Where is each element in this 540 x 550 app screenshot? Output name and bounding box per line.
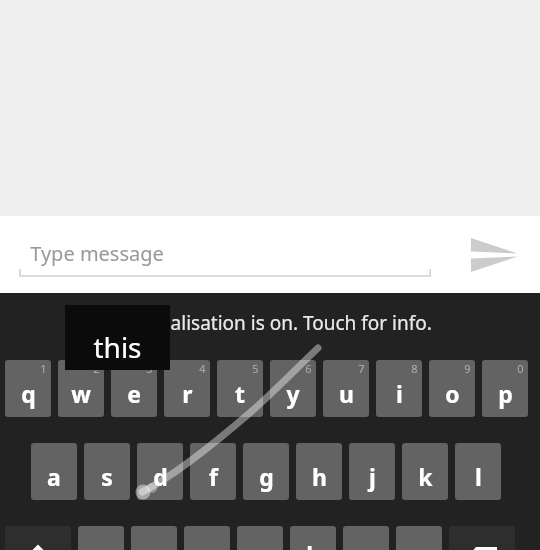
button[interactable]: 9 [429, 360, 475, 417]
button[interactable]: Personalisation is on. Touch for info. [0, 293, 540, 348]
button[interactable]: f [190, 443, 236, 500]
staticText: l [475, 461, 482, 492]
button[interactable]: this [65, 305, 170, 370]
button[interactable]: 1 [5, 360, 51, 417]
button[interactable]: d [137, 443, 183, 500]
button[interactable]: l [455, 443, 501, 500]
staticText: g [259, 461, 274, 492]
staticText: 4 [199, 361, 206, 376]
button[interactable]: Backspace [449, 526, 515, 550]
staticText: d [153, 461, 168, 492]
staticText: u [339, 378, 354, 409]
button[interactable]: a [31, 443, 77, 500]
staticText: 6 [305, 361, 312, 376]
staticText: r [182, 378, 193, 409]
staticText: e [127, 378, 141, 409]
staticText: 1 [40, 361, 47, 376]
staticText: Type message [30, 240, 164, 267]
staticText: y [286, 378, 300, 409]
staticText: 0 [517, 361, 524, 376]
button[interactable]: k [402, 443, 448, 500]
staticText: s [101, 461, 113, 492]
staticText: 3 [146, 361, 153, 376]
button[interactable]: 4 [164, 360, 210, 417]
button[interactable]: 0 [482, 360, 528, 417]
button[interactable]: 5 [217, 360, 263, 417]
button[interactable]: Type message [19, 226, 431, 284]
staticText: q [21, 378, 36, 409]
button[interactable]: Send [462, 230, 526, 280]
staticText: w [71, 378, 91, 409]
button[interactable]: j [349, 443, 395, 500]
staticText: k [418, 461, 433, 492]
staticText: this [93, 328, 142, 366]
button[interactable]: h [296, 443, 342, 500]
staticText: a [47, 461, 61, 492]
button[interactable]: 6 [270, 360, 316, 417]
staticText: 7 [358, 361, 365, 376]
staticText: Personalisation is on. Touch for info. [108, 310, 432, 336]
button[interactable]: 3 [111, 360, 157, 417]
staticText: i [396, 378, 403, 409]
staticText: o [445, 378, 460, 409]
staticText: 9 [464, 361, 471, 376]
button[interactable]: b [290, 526, 336, 550]
button[interactable]: 8 [376, 360, 422, 417]
button[interactable]: s [84, 443, 130, 500]
button[interactable]: 7 [323, 360, 369, 417]
button[interactable]: 2 [58, 360, 104, 417]
staticText: t [235, 378, 245, 409]
staticText: f [209, 461, 218, 492]
staticText: 2 [93, 361, 100, 376]
button[interactable]: Shift [5, 526, 71, 550]
staticText: h [312, 461, 327, 492]
staticText: j [369, 461, 376, 492]
staticText: b [306, 539, 321, 550]
staticText: 5 [252, 361, 259, 376]
button[interactable]: g [243, 443, 289, 500]
staticText: 8 [411, 361, 418, 376]
staticText: p [498, 378, 513, 409]
